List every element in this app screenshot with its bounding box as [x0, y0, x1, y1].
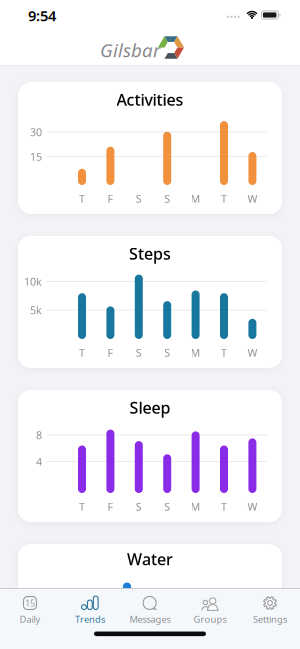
staticText: 15 — [25, 597, 35, 609]
button[interactable]: Settings — [240, 594, 300, 628]
staticText: F — [107, 191, 113, 206]
staticText: 5k — [30, 303, 42, 317]
staticText: T — [79, 345, 85, 360]
staticText: W — [247, 191, 257, 206]
staticText: M — [191, 191, 201, 206]
button[interactable]: Groups — [180, 594, 240, 628]
staticText: Gilsbar — [100, 38, 160, 62]
staticText: S — [136, 191, 142, 206]
staticText: Trends — [75, 613, 105, 625]
staticText: Settings — [253, 613, 287, 625]
staticText: T — [79, 191, 85, 206]
staticText: 8 — [36, 428, 42, 442]
staticText: T — [79, 499, 85, 514]
staticText: T — [221, 499, 227, 514]
button[interactable]: 15 — [0, 594, 60, 628]
staticText: Daily — [19, 613, 40, 625]
staticText: Sleep — [129, 397, 170, 418]
staticText: 15 — [30, 149, 42, 164]
staticText: Water — [127, 548, 173, 570]
staticText: T — [221, 191, 227, 206]
staticText: 4 — [36, 454, 42, 469]
staticText: S — [164, 191, 170, 206]
staticText: S — [164, 345, 170, 360]
staticText: W — [247, 499, 257, 514]
staticText: F — [107, 499, 113, 514]
staticText: M — [191, 345, 201, 360]
staticText: 10k — [24, 274, 42, 289]
staticText: Messages — [129, 613, 170, 625]
staticText: 30 — [30, 125, 42, 139]
staticText: Steps — [129, 243, 171, 264]
staticText: W — [247, 345, 257, 360]
button[interactable]: Trends — [60, 594, 120, 628]
staticText: Activities — [116, 89, 183, 110]
staticText: F — [107, 345, 113, 360]
staticText: 9:54 — [28, 6, 56, 25]
staticText: S — [136, 499, 142, 514]
staticText: S — [136, 345, 142, 360]
staticText: Groups — [193, 613, 226, 625]
staticText: T — [221, 345, 227, 360]
staticText: S — [164, 499, 170, 514]
staticText: M — [191, 499, 201, 514]
button[interactable]: Messages — [120, 594, 180, 628]
